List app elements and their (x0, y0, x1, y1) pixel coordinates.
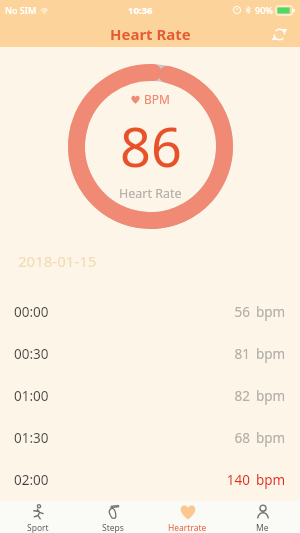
staticText: Sport (27, 522, 49, 533)
staticText: 00:00 (14, 303, 49, 321)
staticText: 01:30 (14, 429, 49, 447)
staticText: 10:36 (128, 4, 153, 17)
staticText: No SIM (5, 4, 37, 16)
staticText: bpm (256, 429, 286, 447)
staticText: BPM (144, 91, 170, 107)
staticText: 140 (226, 471, 250, 489)
button[interactable]: Heartrate (150, 501, 225, 533)
button[interactable]: 02:00 (0, 459, 300, 501)
staticText: Me (256, 522, 269, 533)
staticText: 82 (234, 387, 250, 405)
button[interactable]: Steps (75, 501, 150, 533)
staticText: Heartrate (168, 522, 207, 533)
staticText: bpm (256, 345, 286, 363)
staticText: 56 (234, 303, 250, 321)
staticText: 90% (255, 4, 273, 16)
staticText: 86 (120, 109, 182, 183)
button[interactable]: 00:00 (0, 291, 300, 333)
staticText: Steps (102, 522, 124, 533)
staticText: 00:30 (14, 345, 49, 363)
staticText: Heart Rate (110, 24, 191, 44)
button[interactable]: Me (225, 501, 300, 533)
button[interactable]: Refresh (268, 23, 290, 45)
staticText: 02:00 (14, 471, 49, 489)
button[interactable]: Sport (0, 501, 75, 533)
staticText: 81 (234, 345, 250, 363)
button[interactable]: 01:00 (0, 375, 300, 417)
staticText: 2018-01-15 (18, 251, 97, 271)
staticText: 01:00 (14, 387, 49, 405)
button[interactable]: 00:30 (0, 333, 300, 375)
button[interactable]: 01:30 (0, 417, 300, 459)
staticText: bpm (256, 471, 286, 489)
staticText: 68 (234, 429, 250, 447)
staticText: Heart Rate (119, 185, 182, 202)
staticText: bpm (256, 387, 286, 405)
staticText: bpm (256, 303, 286, 321)
